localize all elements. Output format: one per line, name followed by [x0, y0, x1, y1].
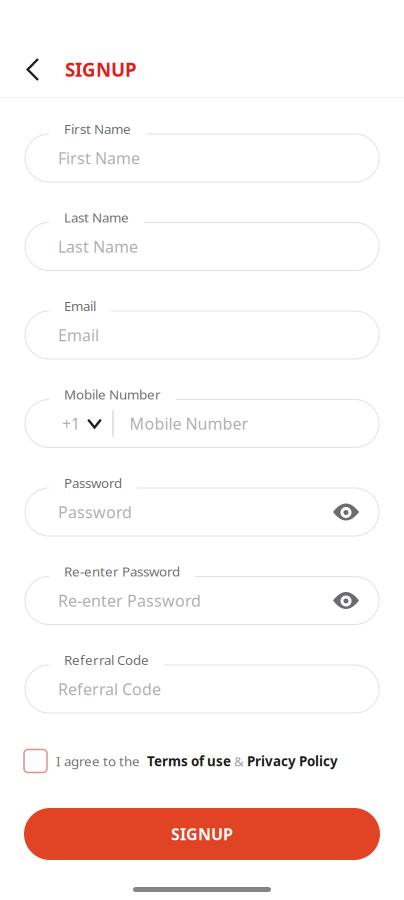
staticText: Email [58, 324, 99, 346]
staticText: Last Name [58, 236, 138, 257]
staticText: Email [64, 297, 96, 315]
staticText: Last Name [64, 208, 129, 226]
staticText: Mobile Number [64, 385, 161, 403]
button[interactable]: Show Re-enter Password [331, 583, 361, 617]
button[interactable]: Back [11, 47, 55, 91]
button[interactable]: Password [25, 488, 379, 536]
button[interactable]: Show Password [331, 495, 361, 529]
button[interactable]: Re-enter Password [25, 576, 379, 624]
staticText: Privacy Policy [247, 752, 338, 770]
button[interactable]: I agree to the terms [24, 749, 143, 773]
button[interactable]: SIGNUP [24, 808, 380, 860]
button[interactable]: Terms of use [147, 749, 231, 773]
staticText: +1 [62, 413, 80, 434]
staticText: SIGNUP [171, 823, 233, 845]
button[interactable]: Privacy Policy [247, 749, 338, 773]
staticText: Re-enter Password [58, 590, 201, 611]
button[interactable]: Mobile Number [25, 399, 379, 447]
staticText: SIGNUP [65, 57, 137, 82]
staticText: First Name [58, 147, 140, 169]
staticText: I agree to the [56, 752, 143, 770]
staticText: Terms of use [147, 752, 231, 770]
staticText: Mobile Number [129, 413, 248, 434]
button[interactable]: First Name [25, 134, 379, 182]
button[interactable]: Country code +1 [62, 406, 102, 440]
staticText: Password [64, 474, 122, 492]
button[interactable]: Referral Code [25, 665, 379, 713]
staticText: Password [58, 501, 132, 523]
staticText: Referral Code [58, 678, 161, 700]
staticText: & [231, 752, 247, 770]
staticText: Re-enter Password [64, 562, 180, 580]
button[interactable]: Last Name [25, 222, 379, 270]
staticText: First Name [64, 120, 131, 138]
button[interactable]: Email [25, 311, 379, 359]
staticText: Referral Code [64, 651, 149, 669]
